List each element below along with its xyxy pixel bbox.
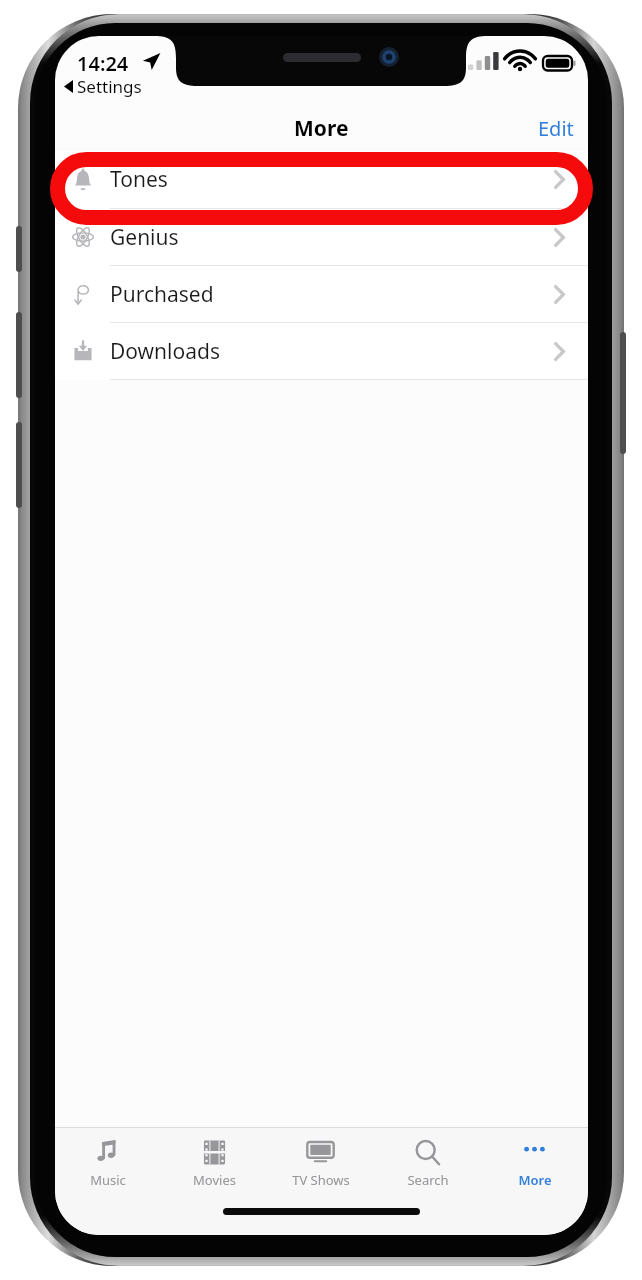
button[interactable]: Search xyxy=(374,1128,481,1206)
staticText: Downloads xyxy=(110,337,220,366)
staticText: Tones xyxy=(110,165,168,194)
staticText: Movies xyxy=(193,1171,236,1189)
button[interactable]: Downloads xyxy=(55,323,588,379)
staticText: Settings xyxy=(77,75,142,98)
staticText: Music xyxy=(90,1171,126,1189)
button[interactable]: Music xyxy=(55,1128,161,1206)
button[interactable]: Edit xyxy=(524,108,588,149)
staticText: TV Shows xyxy=(292,1171,350,1189)
staticText: More xyxy=(294,114,349,143)
button[interactable]: Genius xyxy=(55,209,588,265)
button[interactable]: Purchased xyxy=(55,266,588,322)
staticText: Genius xyxy=(110,223,179,252)
button[interactable]: TV Shows xyxy=(267,1128,374,1206)
button[interactable]: Settings xyxy=(60,73,146,100)
staticText: Edit xyxy=(538,115,574,142)
staticText: 14:24 xyxy=(77,50,129,77)
staticText: More xyxy=(518,1171,552,1189)
button[interactable]: Tones xyxy=(55,151,588,208)
button[interactable]: More xyxy=(481,1128,588,1206)
staticText: Search xyxy=(407,1171,449,1189)
button[interactable]: Movies xyxy=(161,1128,267,1206)
staticText: Purchased xyxy=(110,280,214,309)
